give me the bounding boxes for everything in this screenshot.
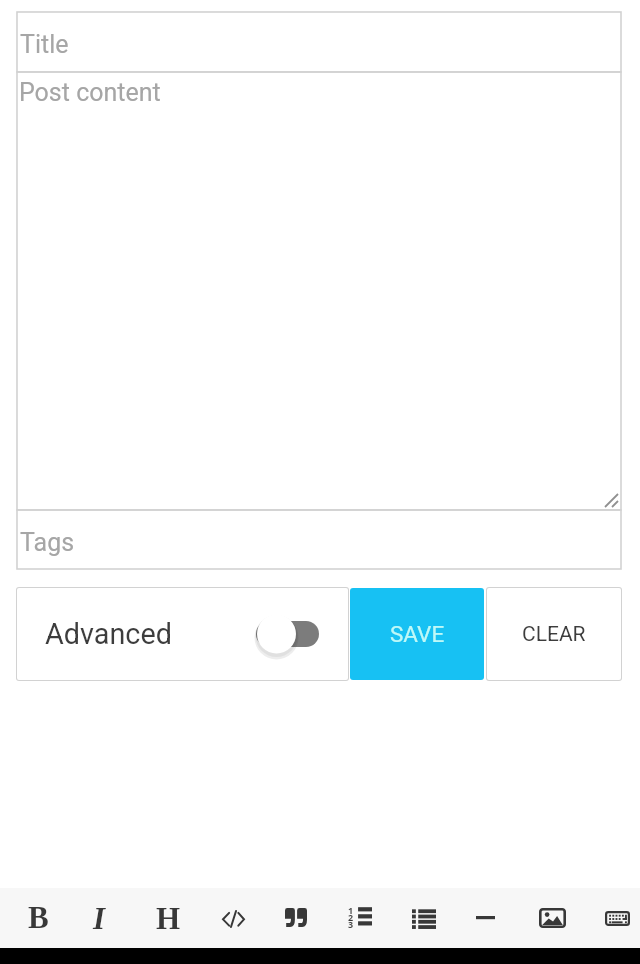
staticText: Tags [20,528,75,557]
button[interactable]: Keyboard [585,888,640,948]
button[interactable]: Code block [201,888,265,948]
button[interactable]: Italic [68,888,132,948]
button[interactable]: Title [17,12,621,72]
button[interactable]: Block quote [264,888,328,948]
button[interactable]: Horizontal rule [453,888,517,948]
staticText: Post content [19,78,161,107]
staticText: SAVE [390,621,445,647]
button[interactable]: Post content [17,72,621,510]
staticText: Title [20,30,69,59]
button[interactable]: Bulleted list [392,888,456,948]
staticText: B [28,900,49,934]
staticText: I [93,901,106,935]
button[interactable]: Advanced [16,587,349,681]
button[interactable]: Heading [136,888,200,948]
staticText: Advanced [45,617,172,651]
button[interactable]: Tags [17,510,621,569]
button[interactable]: Insert image [520,888,584,948]
staticText: H [156,901,181,935]
staticText: CLEAR [522,622,586,647]
staticText: 3 [348,918,354,930]
button[interactable]: Bold [6,888,70,948]
staticText: 2 [348,911,354,923]
button[interactable]: Numbered list [328,888,392,948]
button[interactable]: CLEAR [486,587,622,681]
staticText: 1 [348,904,354,916]
button[interactable]: SAVE [350,588,484,680]
